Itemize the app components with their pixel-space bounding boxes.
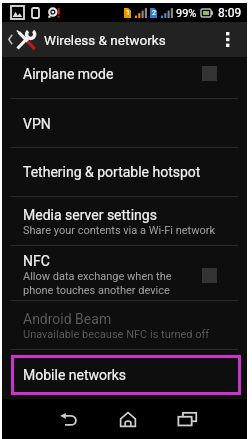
button[interactable]: VPN (2, 99, 247, 147)
staticText: Share your contents via a Wi-Fi network (23, 224, 216, 237)
staticText: Android Beam (23, 311, 112, 327)
staticText: Media server settings (23, 207, 157, 223)
staticText: NFC (23, 253, 50, 269)
staticText: Unavailable because NFC is turned off (23, 328, 210, 341)
button[interactable]: Mobile networks (14, 358, 238, 392)
staticText: Tethering & portable hotspot (23, 164, 201, 180)
staticText: Mobile networks (23, 367, 127, 383)
button[interactable]: Android Beam (2, 301, 247, 349)
button[interactable]: Navigate up (2, 25, 39, 54)
staticText: 99% (176, 7, 197, 20)
staticText: 1 (126, 9, 130, 17)
button[interactable]: Media server settings (2, 197, 247, 245)
staticText: 2 (152, 9, 156, 17)
staticText: VPN (23, 116, 51, 132)
button[interactable]: More options (209, 22, 247, 57)
staticText: Wireless & networks (44, 32, 166, 48)
button[interactable]: Recent apps (165, 399, 209, 439)
button[interactable]: Back (46, 399, 90, 439)
button[interactable]: Airplane mode (2, 57, 247, 98)
staticText: 8:09 (218, 6, 242, 20)
button[interactable]: Tethering & portable hotspot (2, 148, 247, 196)
button[interactable]: Home (106, 399, 150, 439)
staticText: Allow data exchange when the phone touch… (23, 270, 172, 297)
button[interactable]: NFC (2, 246, 247, 300)
staticText: Airplane mode (23, 66, 114, 82)
